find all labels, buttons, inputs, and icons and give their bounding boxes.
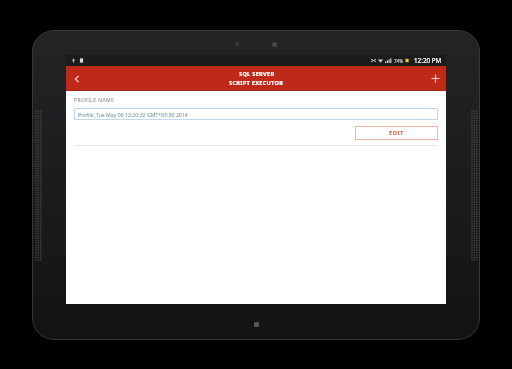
staticText: SQL SERVER [239, 70, 275, 78]
staticText: 12:20 PM [414, 56, 442, 65]
button[interactable]: Add [424, 66, 446, 91]
staticText: SCRIPT EXECUTOR [229, 79, 284, 87]
staticText: Profile_Tue May 06 12:20:32 GMT+05:30 20… [78, 111, 188, 118]
staticText: 74% [394, 58, 403, 64]
staticText: EDIT [389, 129, 404, 137]
staticText: PROFILE NAME [74, 97, 115, 104]
button[interactable]: Back [66, 66, 88, 91]
button[interactable]: EDIT [355, 126, 438, 140]
button[interactable]: Profile_Tue May 06 12:20:32 GMT+05:30 20… [74, 108, 438, 120]
